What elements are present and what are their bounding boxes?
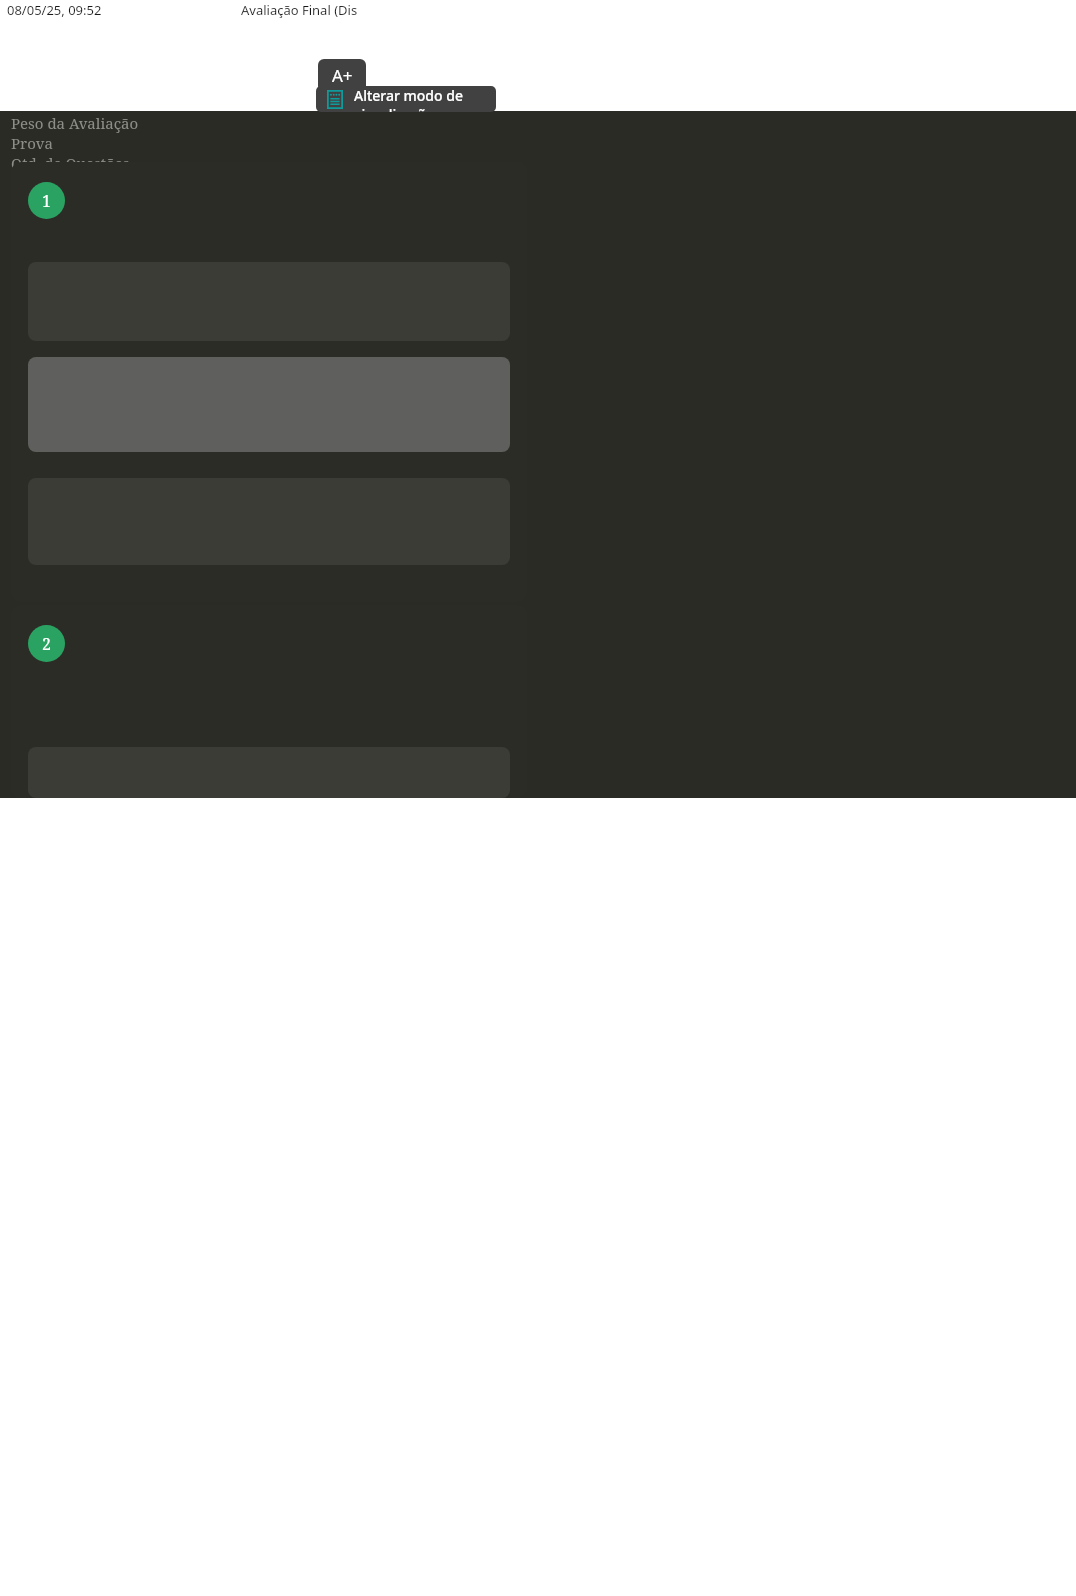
staticText: Qtd. de Questões bbox=[11, 153, 130, 173]
staticText: Prova bbox=[11, 133, 53, 153]
staticText: A+ bbox=[332, 64, 353, 87]
staticText: Nota bbox=[11, 173, 45, 193]
staticText: 08/05/25, 09:52 bbox=[7, 1, 102, 19]
staticText: 2 bbox=[42, 633, 51, 655]
button[interactable]: Alterar modo de visualização bbox=[316, 86, 496, 112]
button[interactable]: Aumentar tamanho da fonte bbox=[318, 59, 366, 92]
staticText: Alterar modo de visualização bbox=[354, 86, 496, 112]
other: Alterar modo de visualização bbox=[327, 90, 343, 109]
staticText: Avaliação Final (Dis bbox=[241, 1, 358, 19]
button[interactable]: 1 bbox=[11, 162, 527, 602]
staticText: 1 bbox=[42, 190, 51, 212]
button[interactable]: 2 bbox=[11, 605, 527, 798]
staticText: Peso da Avaliação bbox=[11, 113, 139, 133]
